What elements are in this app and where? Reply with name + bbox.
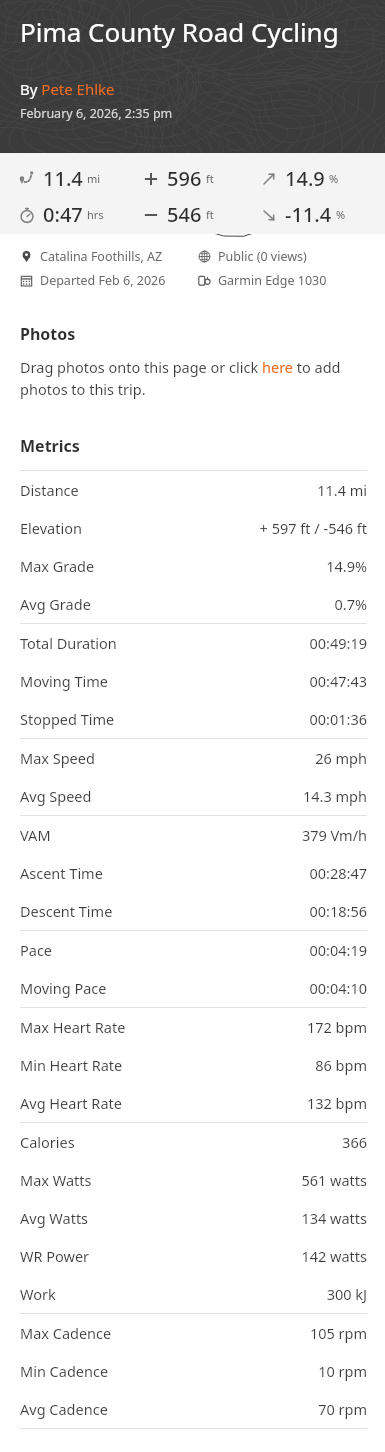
staticText: Moving Time (20, 671, 108, 691)
button[interactable]: Avg Heart Rate (20, 1084, 367, 1122)
staticText: Public (0 views) (218, 248, 307, 265)
button[interactable]: Max Speed (20, 739, 367, 777)
button[interactable]: Min Heart Rate (20, 1046, 367, 1084)
staticText: Avg Cadence (20, 1399, 108, 1419)
staticText: 132 bpm (306, 1093, 367, 1113)
staticText: 0.7% (334, 594, 367, 614)
staticText: Max Speed (20, 748, 95, 768)
staticText: 00:47:43 (309, 671, 367, 691)
button[interactable]: Descent Time (20, 892, 367, 930)
staticText: 561 watts (301, 1170, 367, 1190)
staticText: Avg Grade (20, 594, 91, 614)
staticText: Descent Time (20, 901, 113, 921)
staticText: Avg Heart Rate (20, 1093, 122, 1113)
staticText: 11.4 mi (317, 480, 367, 500)
staticText: 00:04:19 (309, 940, 367, 960)
staticText: VAM (20, 825, 51, 845)
staticText: Photos (20, 323, 76, 345)
staticText: Catalina Foothills, AZ (40, 248, 163, 265)
button[interactable]: Calories (20, 1123, 367, 1161)
staticText: Moving Pace (20, 978, 107, 998)
button[interactable]: Avg Watts (20, 1199, 367, 1237)
staticText: 10 rpm (318, 1361, 367, 1381)
staticText: Calories (20, 1132, 75, 1152)
button[interactable]: Elevation (20, 509, 367, 547)
staticText: Avg Watts (20, 1208, 89, 1228)
staticText: mi (87, 171, 101, 186)
staticText: Max Watts (20, 1170, 92, 1190)
button[interactable]: Avg Cadence (20, 1390, 367, 1428)
staticText: Metrics (20, 435, 80, 457)
button[interactable]: Pace (20, 931, 367, 969)
staticText: 26 mph (315, 748, 367, 768)
button[interactable]: Work (20, 1275, 367, 1313)
button[interactable]: Avg Speed (20, 777, 367, 815)
staticText: ft (206, 171, 214, 186)
staticText: % (329, 171, 339, 186)
button[interactable]: Min Cadence (20, 1352, 367, 1390)
staticText: 379 Vm/h (301, 825, 367, 845)
button[interactable]: Distance (20, 471, 367, 509)
staticText: 0:47 (43, 201, 83, 228)
staticText: Garmin Edge 1030 (218, 272, 327, 289)
staticText: Max Cadence (20, 1323, 112, 1343)
staticText: Distance (20, 480, 79, 500)
staticText: 00:04:10 (309, 978, 367, 998)
staticText: Departed Feb 6, 2026 (40, 272, 166, 289)
staticText: Avg Speed (20, 786, 92, 806)
button[interactable]: Ascent Time (20, 854, 367, 892)
staticText: 00:01:36 (309, 709, 367, 729)
staticText: 596 (167, 165, 202, 192)
staticText: Pima County Road Cycling (20, 14, 339, 49)
staticText: 105 rpm (309, 1323, 367, 1343)
button[interactable]: Max Cadence (20, 1314, 367, 1352)
staticText: 86 bpm (315, 1055, 367, 1075)
staticText: + 597 ft / -546 ft (259, 518, 367, 538)
staticText: 00:49:19 (309, 633, 367, 653)
staticText: 11.4 (43, 165, 83, 192)
staticText: 70 rpm (318, 1399, 367, 1419)
staticText: February 6, 2026, 2:35 pm (20, 105, 173, 122)
staticText: ft (206, 207, 214, 222)
staticText: 300 kJ (326, 1284, 367, 1304)
staticText: Elevation (20, 518, 82, 538)
button[interactable]: Moving Pace (20, 969, 367, 1007)
staticText: 00:18:56 (309, 901, 367, 921)
staticText: Total Duration (20, 633, 117, 653)
staticText: -11.4 (285, 201, 332, 228)
staticText: WR Power (20, 1246, 90, 1266)
staticText: Max Heart Rate (20, 1017, 126, 1037)
button[interactable]: Total Duration (20, 624, 367, 662)
staticText: Max Grade (20, 556, 95, 576)
staticText: 14.9% (326, 556, 367, 576)
button[interactable]: Max Watts (20, 1161, 367, 1199)
staticText: Min Cadence (20, 1361, 109, 1381)
button[interactable]: Drag photos onto this page or click here… (20, 357, 367, 399)
staticText: 14.9 (285, 165, 325, 192)
button[interactable]: By Pete Ehlke (20, 79, 115, 99)
staticText: Work (20, 1284, 56, 1304)
button[interactable]: Max Heart Rate (20, 1008, 367, 1046)
button[interactable]: Max Grade (20, 547, 367, 585)
staticText: 366 (342, 1132, 367, 1152)
staticText: 172 bpm (306, 1017, 367, 1037)
staticText: % (336, 207, 346, 222)
staticText: Stopped Time (20, 709, 115, 729)
button[interactable]: WR Power (20, 1237, 367, 1275)
staticText: 546 (167, 201, 202, 228)
button[interactable]: Avg Grade (20, 585, 367, 623)
button[interactable]: Moving Time (20, 662, 367, 700)
staticText: Min Heart Rate (20, 1055, 123, 1075)
staticText: 134 watts (301, 1208, 367, 1228)
staticText: hrs (87, 207, 104, 222)
staticText: Ascent Time (20, 863, 103, 883)
button[interactable]: VAM (20, 816, 367, 854)
button[interactable]: Stopped Time (20, 700, 367, 738)
staticText: 14.3 mph (303, 786, 367, 806)
staticText: Pace (20, 940, 53, 960)
staticText: 142 watts (301, 1246, 367, 1266)
staticText: 00:28:47 (309, 863, 367, 883)
